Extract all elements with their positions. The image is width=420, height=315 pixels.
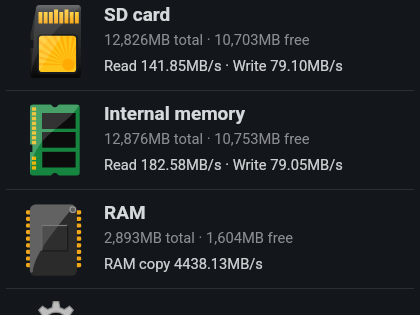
button[interactable]: RAM <box>0 198 420 288</box>
staticText: RAM copy 4438.13MB/s <box>104 255 263 272</box>
staticText: Internal memory <box>104 102 246 124</box>
staticText: 2,893MB total · 1,604MB free <box>104 229 294 246</box>
staticText: 12,876MB total · 10,753MB free <box>104 130 310 147</box>
other: Settings <box>22 301 90 315</box>
staticText: Read 141.85MB/s · Write 79.10MB/s <box>104 57 343 74</box>
staticText: RAM <box>104 201 146 223</box>
button[interactable]: SD card <box>0 0 420 90</box>
button[interactable]: Settings <box>0 289 420 315</box>
button[interactable]: Internal memory <box>0 99 420 189</box>
staticText: 12,826MB total · 10,703MB free <box>104 31 310 48</box>
staticText: SD card <box>104 3 171 25</box>
staticText: Read 182.58MB/s · Write 79.05MB/s <box>104 156 343 173</box>
